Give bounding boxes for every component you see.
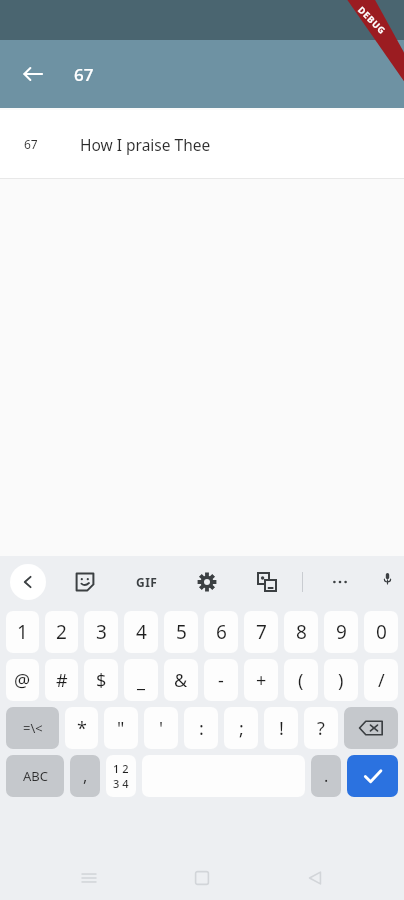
button[interactable]: ( xyxy=(284,659,318,701)
button[interactable]: 7 xyxy=(244,611,278,653)
button[interactable]: More options xyxy=(321,563,359,601)
staticText: ' xyxy=(159,716,164,741)
button[interactable]: $ xyxy=(84,659,118,701)
staticText: : xyxy=(199,716,204,741)
staticText: - xyxy=(218,668,224,693)
staticText: _ xyxy=(137,668,145,693)
staticText: How I praise Thee xyxy=(80,134,211,155)
staticText: & xyxy=(174,668,188,693)
button[interactable]: 4 xyxy=(124,611,158,653)
staticText: 67 xyxy=(24,136,38,152)
staticText: . xyxy=(324,765,329,787)
staticText: 8 xyxy=(296,619,307,645)
button[interactable]: * xyxy=(65,707,98,749)
button[interactable]: ABC xyxy=(6,755,64,797)
button[interactable]: Voice input xyxy=(381,563,394,601)
staticText: 6 xyxy=(216,619,227,645)
button[interactable]: ; xyxy=(224,707,258,749)
button[interactable]: Back xyxy=(291,856,339,900)
button[interactable]: / xyxy=(364,659,398,701)
button[interactable]: ! xyxy=(264,707,298,749)
staticText: =\< xyxy=(23,719,43,737)
staticText: ? xyxy=(317,716,325,741)
staticText: ! xyxy=(279,716,284,741)
staticText: ABC xyxy=(23,767,48,785)
button[interactable]: Stickers xyxy=(66,563,104,601)
button[interactable]: - xyxy=(204,659,238,701)
staticText: / xyxy=(378,668,385,693)
button[interactable]: 6 xyxy=(204,611,238,653)
staticText: 4 xyxy=(136,619,147,645)
button[interactable]: : xyxy=(184,707,218,749)
button[interactable]: Collapse toolbar xyxy=(10,564,46,600)
staticText: * xyxy=(77,716,87,741)
staticText: ) xyxy=(338,668,344,693)
staticText: @ xyxy=(14,668,31,693)
button[interactable]: Recent apps xyxy=(65,856,113,900)
button[interactable]: Home xyxy=(178,856,226,900)
staticText: " xyxy=(117,716,125,741)
staticText: ( xyxy=(298,668,304,693)
staticText: # xyxy=(56,668,68,693)
staticText: 0 xyxy=(376,619,387,645)
button[interactable]: ' xyxy=(144,707,178,749)
button[interactable]: 1 xyxy=(6,611,39,653)
button[interactable]: & xyxy=(164,659,198,701)
button[interactable]: Enter xyxy=(347,755,398,797)
button[interactable]: =\< xyxy=(6,707,59,749)
button[interactable]: Settings xyxy=(188,563,226,601)
button[interactable]: 5 xyxy=(164,611,198,653)
button[interactable]: , xyxy=(70,755,100,797)
staticText: ; xyxy=(239,716,244,741)
button[interactable]: 67 xyxy=(0,110,404,178)
staticText: 1 2 xyxy=(113,761,129,776)
button[interactable]: " xyxy=(104,707,138,749)
button[interactable]: Back xyxy=(10,51,56,97)
staticText: 9 xyxy=(336,619,347,645)
staticText: GIF xyxy=(136,574,158,590)
button[interactable]: _ xyxy=(124,659,158,701)
button[interactable]: 9 xyxy=(324,611,358,653)
button[interactable]: GIF xyxy=(128,563,166,601)
button[interactable]: . xyxy=(311,755,341,797)
button[interactable]: 2 xyxy=(45,611,78,653)
button[interactable]: ? xyxy=(304,707,338,749)
staticText: , xyxy=(83,765,88,787)
button[interactable]: @ xyxy=(6,659,39,701)
staticText: $ xyxy=(96,668,107,693)
staticText: + xyxy=(256,668,267,693)
button[interactable]: 0 xyxy=(364,611,398,653)
button[interactable]: Backspace xyxy=(344,707,398,749)
staticText: 5 xyxy=(176,619,187,645)
button[interactable]: Number pad xyxy=(106,755,136,797)
button[interactable]: 8 xyxy=(284,611,318,653)
staticText: 3 4 xyxy=(113,776,129,791)
staticText: 3 xyxy=(96,619,107,645)
staticText: 2 xyxy=(56,619,67,645)
button[interactable]: Translate xyxy=(248,563,286,601)
button[interactable]: ) xyxy=(324,659,358,701)
button[interactable]: + xyxy=(244,659,278,701)
staticText: 7 xyxy=(256,619,267,645)
staticText: DEBUG xyxy=(356,3,389,37)
staticText: 67 xyxy=(74,63,94,86)
button[interactable]: 3 xyxy=(84,611,118,653)
button[interactable]: # xyxy=(45,659,78,701)
staticText: 1 xyxy=(17,619,28,645)
